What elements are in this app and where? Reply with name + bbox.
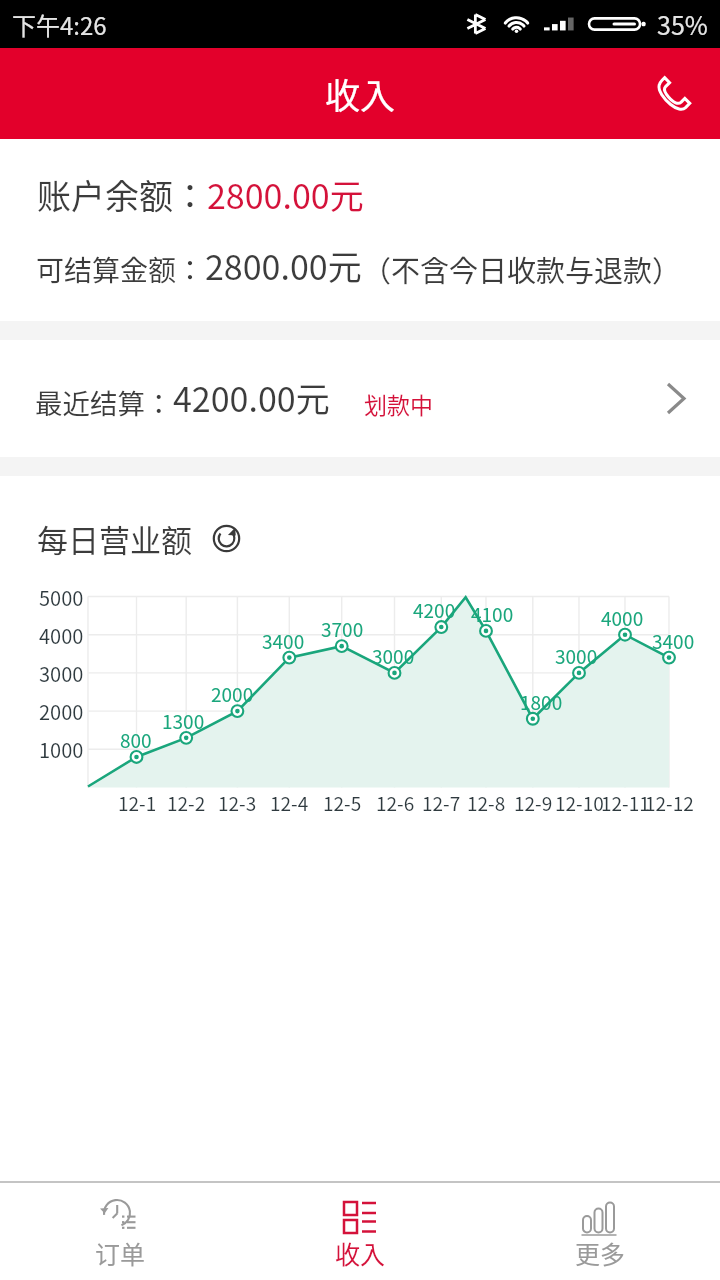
staticText: 12-10: [555, 789, 604, 817]
staticText: 12-7: [422, 789, 461, 817]
staticText: 12-8: [467, 789, 506, 817]
staticText: 3400: [262, 627, 305, 655]
staticText: 2800.00元: [207, 170, 364, 219]
staticText: 12-9: [514, 789, 553, 817]
staticText: 2000: [211, 680, 254, 708]
staticText: 可结算金额：: [36, 249, 205, 290]
staticText: 4100: [471, 600, 514, 628]
button[interactable]: 更多: [480, 1183, 720, 1280]
staticText: 3000: [39, 659, 84, 688]
button[interactable]: Refresh: [213, 525, 240, 552]
staticText: 35%: [657, 6, 708, 42]
staticText: 4200: [413, 596, 456, 624]
staticText: 1800: [520, 688, 563, 716]
button[interactable]: Call: [628, 48, 720, 139]
staticText: 4000: [601, 604, 644, 632]
staticText: 最近结算：: [35, 382, 173, 422]
staticText: 更多: [575, 1235, 626, 1271]
button[interactable]: 收入: [240, 1183, 480, 1280]
staticText: 每日营业额: [37, 516, 192, 561]
staticText: 12-3: [218, 789, 257, 817]
staticText: 4200.00元: [173, 373, 330, 422]
staticText: 12-6: [376, 789, 415, 817]
staticText: 12-5: [323, 789, 362, 817]
staticText: 订单: [95, 1235, 146, 1271]
staticText: 12-12: [645, 789, 694, 817]
button[interactable]: 最近结算：: [0, 340, 720, 457]
staticText: 12-4: [270, 789, 309, 817]
staticText: 3400: [652, 627, 695, 655]
staticText: 12-11: [601, 789, 650, 817]
staticText: 下午4:26: [12, 7, 107, 42]
staticText: 2000: [39, 697, 84, 726]
staticText: （不含今日收款与退款）: [362, 248, 682, 290]
staticText: 12-2: [167, 789, 206, 817]
staticText: 收入: [335, 1235, 386, 1271]
staticText: 12-1: [118, 789, 157, 817]
staticText: 账户余额：: [37, 170, 207, 219]
button[interactable]: 订单: [0, 1183, 240, 1280]
staticText: 3000: [372, 642, 415, 670]
staticText: 1300: [162, 707, 205, 735]
staticText: 800: [120, 726, 152, 754]
staticText: 3700: [321, 615, 364, 643]
staticText: 2800.00元: [205, 241, 362, 290]
staticText: 4000: [39, 621, 84, 650]
staticText: 3000: [555, 642, 598, 670]
staticText: 5000: [39, 583, 84, 612]
staticText: 1000: [39, 735, 84, 764]
staticText: 划款中: [364, 387, 433, 420]
staticText: 收入: [325, 68, 396, 119]
